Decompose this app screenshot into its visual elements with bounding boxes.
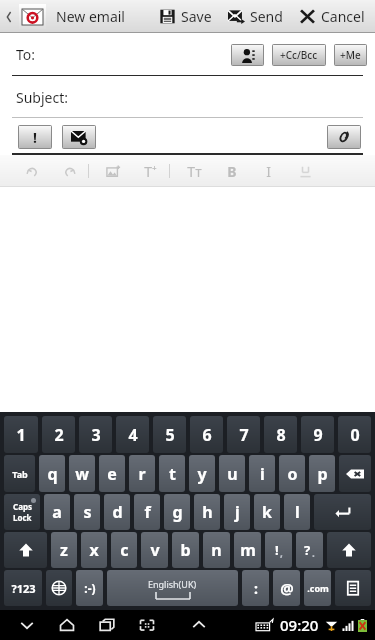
staticText: B <box>227 162 237 181</box>
button[interactable]: +Cc/Bcc <box>273 45 325 65</box>
staticText: To: <box>16 45 36 64</box>
button[interactable]: u <box>219 455 245 492</box>
button[interactable]: Save <box>157 3 214 30</box>
button[interactable]: 8 <box>264 416 297 453</box>
staticText: T⁺ <box>144 162 157 181</box>
button[interactable]: Priority <box>19 126 51 148</box>
button[interactable]: Space <box>107 570 238 606</box>
staticText: w <box>75 463 89 485</box>
button[interactable]: Underline <box>287 155 324 187</box>
staticText: o <box>287 463 298 485</box>
button[interactable]: Caps Lock <box>4 494 40 530</box>
button[interactable]: Shift <box>4 532 47 568</box>
button[interactable]: Screenshot <box>136 614 158 636</box>
button[interactable]: Subject: <box>0 76 375 118</box>
button[interactable]: x <box>81 532 107 568</box>
staticText: Save <box>181 7 212 26</box>
button[interactable]: v <box>141 532 168 568</box>
button[interactable]: a <box>44 494 70 530</box>
button[interactable]: w <box>69 455 95 492</box>
button[interactable]: q <box>39 455 65 492</box>
staticText: d <box>112 501 123 523</box>
button[interactable]: Clipboard <box>335 570 371 606</box>
button[interactable]: New email <box>17 4 127 29</box>
button[interactable]: o <box>279 455 305 492</box>
button[interactable]: b <box>172 532 199 568</box>
button[interactable]: +Me <box>335 45 366 65</box>
button[interactable]: :-) <box>76 570 103 606</box>
button[interactable]: 9 <box>301 416 334 453</box>
button[interactable]: d <box>104 494 130 530</box>
staticText: v <box>150 539 160 561</box>
button[interactable]: n <box>203 532 230 568</box>
staticText: Cancel <box>321 7 365 26</box>
button[interactable]: Text color <box>176 155 213 187</box>
button[interactable]: k <box>254 494 280 530</box>
button[interactable]: Language <box>46 570 72 606</box>
button[interactable]: Contacts <box>232 45 263 65</box>
staticText: 6 <box>202 424 212 446</box>
button[interactable]: Undo <box>14 155 51 187</box>
button[interactable]: h <box>194 494 220 530</box>
button[interactable]: Recents <box>96 614 118 636</box>
button[interactable]: z <box>51 532 77 568</box>
button[interactable]: 7 <box>227 416 260 453</box>
button[interactable]: More <box>324 155 361 187</box>
button[interactable]: Insert image <box>95 155 132 187</box>
button[interactable]: m <box>234 532 261 568</box>
button[interactable]: Shift <box>327 532 371 568</box>
button[interactable]: ! <box>265 532 292 568</box>
staticText: : <box>254 579 258 598</box>
button[interactable]: Send <box>226 3 285 30</box>
staticText: I <box>266 162 271 181</box>
button[interactable]: c <box>111 532 137 568</box>
staticText: j <box>235 501 240 523</box>
button[interactable]: i <box>249 455 275 492</box>
staticText: New email <box>56 7 125 26</box>
button[interactable]: Home <box>56 614 78 636</box>
button[interactable]: g <box>164 494 190 530</box>
button[interactable]: Tab <box>4 455 35 492</box>
staticText: .com <box>307 582 329 594</box>
staticText: f <box>144 501 151 523</box>
staticText: n <box>211 539 222 561</box>
button[interactable]: l <box>284 494 310 530</box>
button[interactable]: Cancel <box>297 3 367 30</box>
button[interactable]: j <box>224 494 250 530</box>
staticText: +Cc/Bcc <box>280 48 318 62</box>
button[interactable]: 3 <box>79 416 112 453</box>
staticText: a <box>52 501 62 523</box>
staticText: 7 <box>239 424 249 446</box>
button[interactable]: p <box>309 455 335 492</box>
button[interactable]: Italic <box>250 155 287 187</box>
button[interactable]: 6 <box>190 416 223 453</box>
staticText: q <box>47 463 58 485</box>
button[interactable]: t <box>159 455 185 492</box>
button[interactable]: Attach <box>328 126 360 148</box>
button[interactable]: Backspace <box>339 455 371 492</box>
button[interactable]: 0 <box>338 416 371 453</box>
button[interactable]: Text size <box>132 155 169 187</box>
button[interactable]: r <box>129 455 155 492</box>
button[interactable]: ?123 <box>4 570 42 606</box>
button[interactable]: s <box>74 494 100 530</box>
button[interactable]: 5 <box>153 416 186 453</box>
button[interactable]: .com <box>304 570 331 606</box>
button[interactable]: Back <box>16 614 38 636</box>
button[interactable]: e <box>99 455 125 492</box>
button[interactable]: : <box>242 570 269 606</box>
staticText: h <box>202 501 213 523</box>
staticText: . <box>312 546 315 560</box>
button[interactable]: y <box>189 455 215 492</box>
button[interactable]: Expand <box>188 614 210 636</box>
button[interactable]: ? <box>296 532 323 568</box>
button[interactable]: Bold <box>213 155 250 187</box>
button[interactable]: 2 <box>42 416 75 453</box>
button[interactable]: 4 <box>116 416 149 453</box>
button[interactable]: 1 <box>4 416 38 453</box>
button[interactable]: f <box>134 494 160 530</box>
button[interactable]: Tracking <box>63 126 95 148</box>
button[interactable]: Redo <box>51 155 88 187</box>
button[interactable]: @ <box>273 570 300 606</box>
button[interactable]: Enter <box>314 494 371 530</box>
